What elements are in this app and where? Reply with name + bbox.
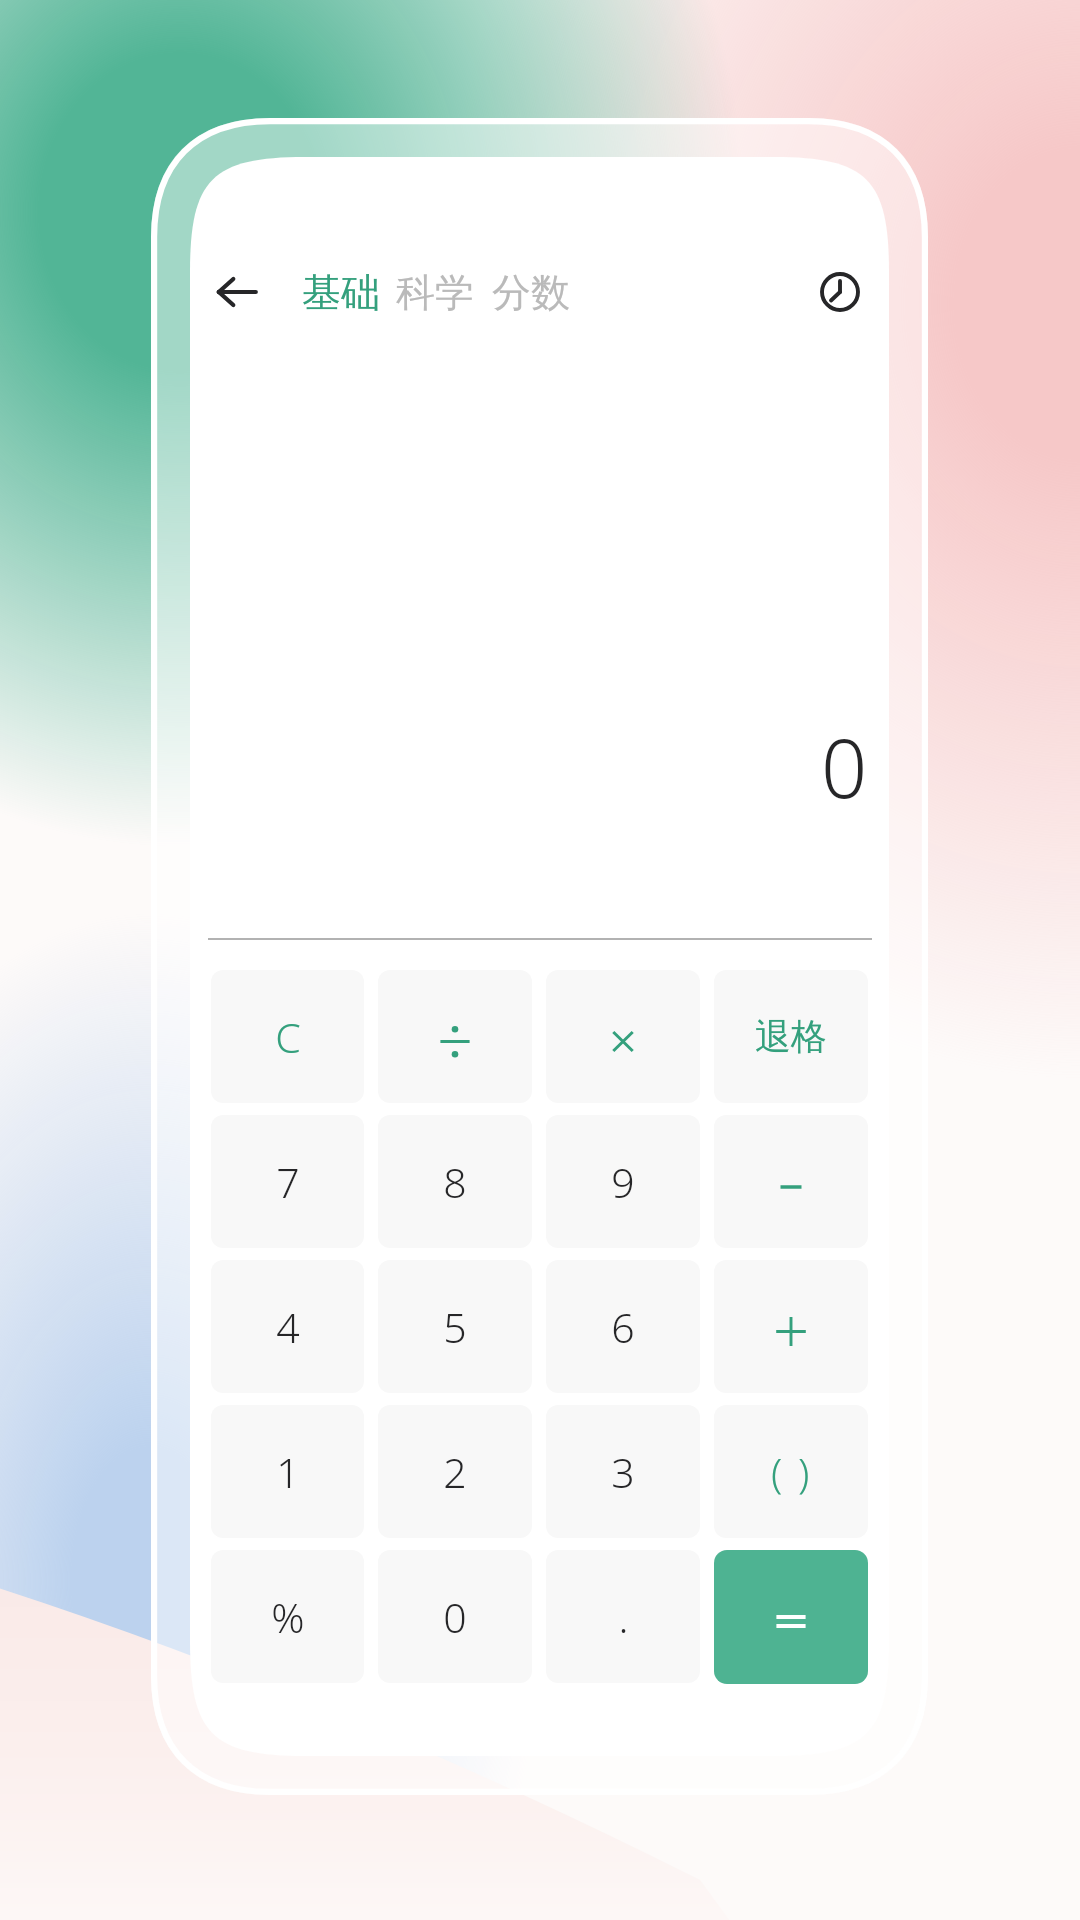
button[interactable]: 7 bbox=[211, 1115, 364, 1248]
button[interactable]: Divide bbox=[378, 970, 532, 1103]
staticText: 分数 bbox=[492, 268, 570, 317]
staticText: 9 bbox=[611, 1154, 635, 1210]
button[interactable]: 0 bbox=[378, 1550, 532, 1683]
button[interactable]: ( ) bbox=[714, 1405, 868, 1538]
button[interactable]: Equals bbox=[714, 1550, 868, 1684]
staticText: % bbox=[271, 1589, 305, 1645]
button[interactable]: C bbox=[211, 970, 364, 1103]
button[interactable]: 分数 bbox=[492, 268, 570, 317]
button[interactable]: Minus bbox=[714, 1115, 868, 1248]
button[interactable]: 3 bbox=[546, 1405, 700, 1538]
button[interactable]: 4 bbox=[211, 1260, 364, 1393]
staticText: ( ) bbox=[771, 1444, 812, 1500]
staticText: 2 bbox=[443, 1444, 467, 1500]
button[interactable]: 1 bbox=[211, 1405, 364, 1538]
button[interactable]: Back bbox=[205, 260, 269, 324]
staticText: . bbox=[618, 1589, 629, 1645]
staticText: C bbox=[275, 1009, 301, 1065]
button[interactable]: 9 bbox=[546, 1115, 700, 1248]
staticText: 4 bbox=[276, 1299, 300, 1355]
button[interactable]: 2 bbox=[378, 1405, 532, 1538]
button[interactable]: 基础 bbox=[302, 268, 380, 317]
button[interactable]: 科学 bbox=[396, 268, 474, 317]
button[interactable]: % bbox=[211, 1550, 364, 1683]
staticText: 8 bbox=[443, 1154, 467, 1210]
button[interactable]: . bbox=[546, 1550, 700, 1683]
staticText: 科学 bbox=[396, 268, 474, 317]
staticText: 6 bbox=[611, 1299, 635, 1355]
staticText: 退格 bbox=[755, 1014, 827, 1059]
button[interactable]: 6 bbox=[546, 1260, 700, 1393]
staticText: 5 bbox=[443, 1299, 467, 1355]
button[interactable]: Plus bbox=[714, 1260, 868, 1393]
button[interactable]: 5 bbox=[378, 1260, 532, 1393]
staticText: 3 bbox=[611, 1444, 635, 1500]
button[interactable]: History bbox=[808, 260, 872, 324]
button[interactable]: Multiply bbox=[546, 970, 700, 1103]
staticText: 0 bbox=[821, 711, 868, 821]
button[interactable]: 8 bbox=[378, 1115, 532, 1248]
staticText: 0 bbox=[443, 1589, 467, 1645]
staticText: 基础 bbox=[302, 268, 380, 317]
staticText: 1 bbox=[276, 1444, 300, 1500]
button[interactable]: 退格 bbox=[714, 970, 868, 1103]
staticText: 7 bbox=[276, 1154, 300, 1210]
